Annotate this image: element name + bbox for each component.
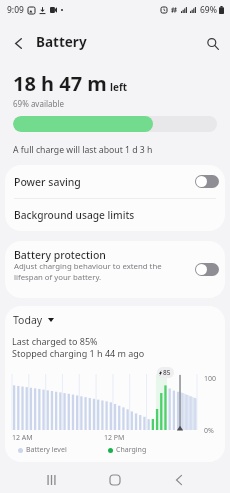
staticText: 0% bbox=[204, 426, 214, 436]
staticText: left bbox=[110, 80, 128, 94]
button[interactable]: Background usage limits bbox=[5, 199, 225, 231]
staticText: Battery level bbox=[26, 445, 67, 455]
staticText: 85 bbox=[163, 368, 171, 377]
staticText: 12 AM bbox=[12, 433, 33, 443]
staticText: Background usage limits bbox=[14, 208, 135, 222]
button[interactable]: Toggle bbox=[195, 175, 219, 188]
staticText: 9:09 bbox=[7, 4, 24, 16]
staticText: Adjust charging behaviour to extend the … bbox=[14, 261, 162, 283]
button[interactable]: Charging bbox=[108, 445, 147, 455]
button[interactable]: Today bbox=[13, 313, 56, 327]
staticText: 69% available bbox=[13, 98, 65, 109]
button[interactable]: Battery protection bbox=[5, 241, 225, 298]
staticText: 18 h 47 m bbox=[13, 70, 107, 97]
staticText: Power saving bbox=[14, 175, 81, 189]
staticText: 100 bbox=[204, 374, 217, 384]
staticText: 12 PM bbox=[104, 433, 125, 443]
button[interactable]: Back bbox=[164, 465, 194, 493]
button[interactable]: Toggle bbox=[195, 263, 219, 276]
button[interactable]: Battery level bbox=[18, 445, 67, 455]
staticText: Today bbox=[13, 313, 43, 327]
button[interactable]: Search bbox=[196, 28, 230, 56]
staticText: Battery protection bbox=[14, 248, 106, 262]
staticText: A full charge will last about 1 d 3 h bbox=[13, 144, 153, 156]
staticText: 69% bbox=[200, 4, 217, 16]
staticText: Charging bbox=[116, 445, 147, 455]
staticText: Stopped charging 1 h 44 m ago bbox=[12, 347, 145, 359]
staticText: Last charged to 85% bbox=[12, 335, 98, 347]
button[interactable]: Navigate up bbox=[0, 28, 36, 56]
button[interactable]: Power saving bbox=[5, 165, 225, 198]
button[interactable]: Recent apps bbox=[36, 465, 66, 493]
staticText: Battery bbox=[36, 33, 87, 51]
button[interactable]: Home bbox=[100, 465, 130, 493]
